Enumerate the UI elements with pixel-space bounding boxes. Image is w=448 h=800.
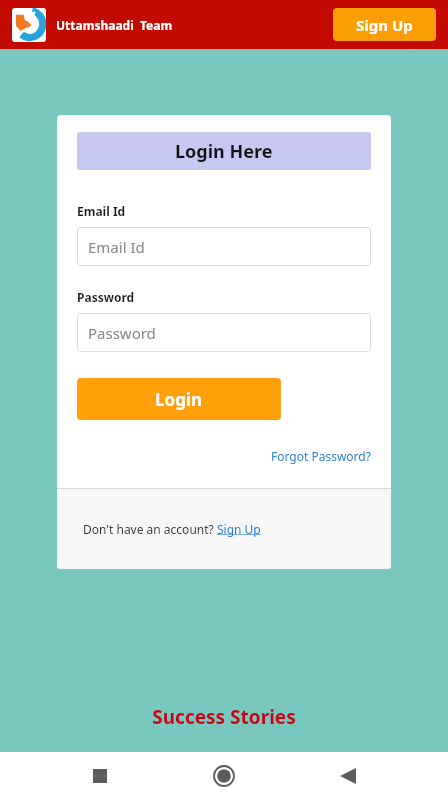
staticText: Sign Up	[217, 521, 261, 537]
staticText: Login Here	[175, 139, 273, 164]
staticText: Forgot Password?	[271, 448, 371, 464]
button[interactable]: Forgot Password?	[271, 448, 371, 464]
staticText: Login	[155, 388, 203, 411]
button[interactable]: Email Id	[77, 227, 371, 266]
staticText: Uttamshaadi Team	[56, 17, 173, 33]
button[interactable]: Sign Up	[333, 8, 436, 41]
button[interactable]: Password	[77, 313, 371, 352]
button[interactable]: Uttamshaadi logo	[12, 8, 46, 42]
button[interactable]: Recent apps	[76, 752, 124, 800]
staticText: Password	[88, 323, 156, 343]
button[interactable]: Home	[200, 752, 248, 800]
staticText: Email Id	[88, 237, 145, 257]
staticText: Success Stories	[0, 704, 448, 730]
button[interactable]: Back	[324, 752, 372, 800]
staticText: Sign Up	[356, 15, 413, 35]
staticText: Password	[77, 289, 135, 305]
staticText: Email Id	[77, 203, 126, 219]
staticText: Don't have an account?	[83, 521, 217, 537]
button[interactable]: Login	[77, 378, 281, 420]
button[interactable]: Sign Up	[217, 521, 261, 537]
